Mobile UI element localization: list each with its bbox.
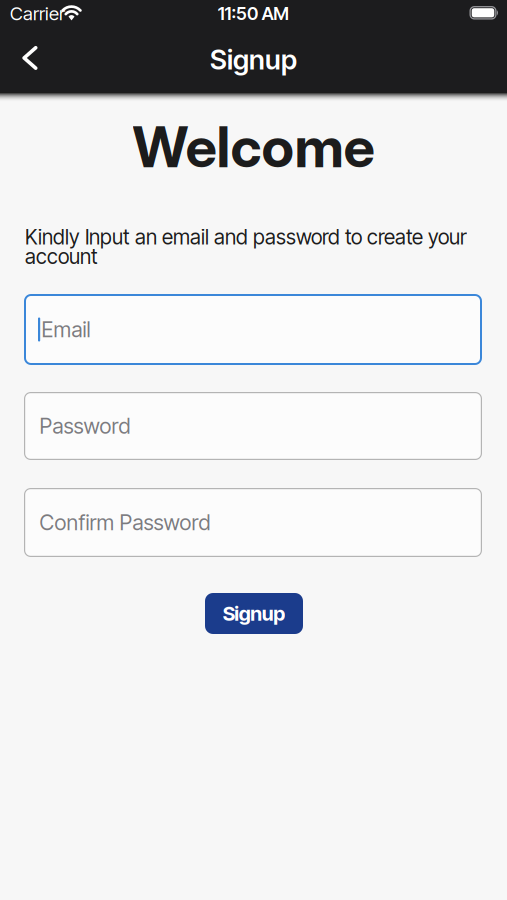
staticText: Welcome bbox=[132, 113, 374, 181]
button[interactable]: Confirm Password bbox=[24, 488, 482, 557]
staticText: Carrier bbox=[10, 2, 65, 25]
staticText: Signup bbox=[210, 43, 297, 76]
staticText: Email bbox=[41, 317, 90, 342]
button[interactable]: Email bbox=[24, 294, 482, 365]
staticText: 11:50 AM bbox=[218, 3, 289, 24]
button[interactable]: Back bbox=[10, 36, 50, 80]
staticText: account bbox=[25, 244, 98, 269]
staticText: Password bbox=[40, 413, 131, 439]
staticText: Confirm Password bbox=[40, 510, 211, 535]
button[interactable]: Password bbox=[24, 392, 482, 460]
staticText: Signup bbox=[223, 601, 285, 626]
staticText: Kindly Input an email and password to cr… bbox=[25, 224, 467, 249]
button[interactable]: Signup bbox=[205, 593, 303, 634]
